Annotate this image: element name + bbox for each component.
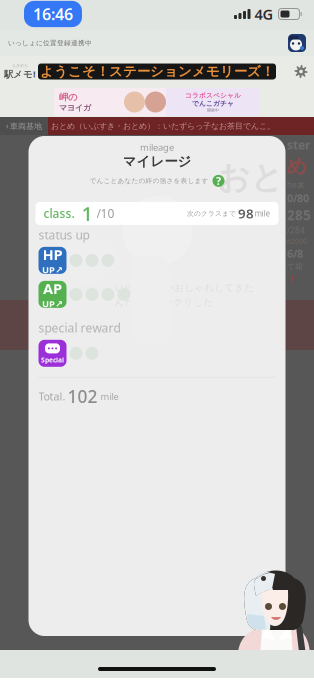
staticText: マヨイガ: [59, 103, 91, 113]
staticText: heat: [287, 179, 304, 190]
staticText: ！: [287, 272, 298, 286]
staticText: め: [287, 154, 307, 178]
staticText: 98: [238, 205, 254, 222]
staticText: 62000: [287, 237, 307, 245]
staticText: mile: [100, 390, 118, 402]
staticText: AP: [43, 279, 62, 298]
staticText: 1: [81, 200, 92, 227]
staticText: 次のクラスまで: [187, 209, 236, 217]
staticText: 6/8: [287, 246, 303, 261]
staticText: いらっしゃいおしゃれしてきた: [114, 282, 254, 293]
button[interactable]: Help: [212, 174, 224, 188]
staticText: 4G: [254, 4, 273, 24]
staticText: mile: [254, 208, 270, 219]
staticText: 岬の: [59, 91, 78, 103]
staticText: コラボスペシャル: [185, 91, 241, 100]
staticText: ‹ 車両基地: [6, 121, 42, 131]
staticText: class.: [43, 205, 74, 221]
staticText: /284: [287, 225, 305, 236]
staticText: UP↗: [42, 297, 63, 310]
staticText: んだね！ビックリした: [114, 296, 213, 308]
staticText: 102: [67, 385, 97, 408]
staticText: UP↗: [42, 263, 63, 276]
staticText: special reward: [38, 320, 120, 336]
staticText: でんことあなたの絆の強さを表します: [89, 177, 208, 185]
staticText: て箱: [287, 262, 303, 271]
staticText: Total.: [38, 389, 65, 403]
staticText: mileage: [140, 141, 174, 153]
staticText: ?: [216, 174, 221, 188]
staticText: 開催中: [207, 108, 219, 113]
staticText: えきめも: [12, 63, 28, 68]
staticText: おとめ（いぶすき・おとめ）：いたずらっ子なお茶目でんこ。: [51, 121, 275, 131]
staticText: おと: [217, 158, 283, 197]
staticText: マイレージ: [122, 153, 191, 170]
staticText: ster: [287, 137, 310, 153]
staticText: 285: [287, 206, 311, 224]
staticText: HP: [42, 245, 62, 264]
staticText: 駅メモ!: [4, 68, 36, 80]
staticText: /10: [96, 205, 114, 221]
staticText: ようこそ！ステーションメモリーズ！: [40, 63, 274, 80]
staticText: Special: [41, 355, 64, 364]
button[interactable]: Settings: [288, 59, 314, 83]
staticText: でんこガチャ: [192, 99, 234, 108]
staticText: 0/80: [287, 191, 309, 205]
staticText: status up: [38, 227, 89, 243]
staticText: 16:46: [33, 3, 73, 25]
staticText: いっしょに位置登録連携中: [8, 39, 92, 47]
